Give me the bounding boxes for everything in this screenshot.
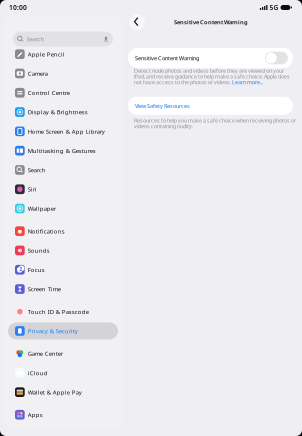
button[interactable]: Apps xyxy=(8,405,118,424)
staticText: Search xyxy=(26,35,44,43)
staticText: Apps xyxy=(28,411,43,419)
button[interactable]: Game Center xyxy=(8,344,118,363)
button[interactable]: Screen Time xyxy=(8,279,118,299)
button[interactable]: Search xyxy=(8,160,118,180)
staticText: Sensitive Content Warning xyxy=(135,54,199,62)
staticText: iPad, and receive guidance to help make … xyxy=(134,73,290,80)
button[interactable]: Wallet & Apple Pay xyxy=(8,382,118,402)
button[interactable]: Notifications xyxy=(8,221,118,241)
button[interactable]: Siri xyxy=(8,180,118,199)
button[interactable]: Wallpaper xyxy=(8,199,118,218)
staticText: Game Center xyxy=(28,350,63,358)
staticText: Focus xyxy=(28,266,45,274)
staticText: Learn more... xyxy=(232,78,263,86)
staticText: Wallet & Apple Pay xyxy=(28,388,82,396)
button[interactable]: Multitasking & Gestures xyxy=(8,141,118,160)
staticText: Siri xyxy=(28,185,37,193)
staticText: Display & Brightness xyxy=(28,108,88,116)
button[interactable]: Back xyxy=(129,14,145,30)
button[interactable]: Control Centre xyxy=(8,83,118,102)
staticText: Notifications xyxy=(28,227,65,235)
staticText: Sounds xyxy=(28,246,50,254)
staticText: 10:00 xyxy=(9,3,27,12)
staticText: Screen Time xyxy=(28,285,61,293)
button[interactable]: View Safety Resources xyxy=(128,97,293,115)
staticText: Apple Pencil xyxy=(28,50,65,58)
staticText: Privacy & Security xyxy=(28,327,78,335)
button[interactable]: Home Screen & App Library xyxy=(8,122,118,141)
staticText: Search xyxy=(28,166,46,174)
button[interactable]: Sounds xyxy=(8,241,118,260)
staticText: Multitasking & Gestures xyxy=(28,147,96,155)
staticText: 5G xyxy=(269,3,278,12)
staticText: videos containing nudity. xyxy=(134,123,193,130)
button[interactable]: Camera xyxy=(8,64,118,83)
staticText: Home Screen & App Library xyxy=(28,127,105,135)
button[interactable]: iCloud xyxy=(8,363,118,382)
button[interactable]: Focus xyxy=(8,260,118,279)
staticText: not have access to the photos or videos. xyxy=(134,78,232,86)
button[interactable]: Privacy & Security xyxy=(8,321,118,341)
staticText: Control Centre xyxy=(28,89,70,97)
staticText: iCloud xyxy=(28,369,48,377)
staticText: Sensitive Content Warning xyxy=(174,18,248,26)
button[interactable]: Apple Pencil xyxy=(8,44,118,64)
staticText: Wallpaper xyxy=(28,205,56,213)
button[interactable]: Search xyxy=(13,31,113,46)
staticText: Touch ID & Passcode xyxy=(28,308,89,316)
button[interactable]: Touch ID & Passcode xyxy=(8,302,118,321)
staticText: Resources to help you make a safe choice… xyxy=(134,117,296,124)
staticText: Camera xyxy=(28,69,48,77)
staticText: Detect nude photos and videos before the… xyxy=(134,67,284,74)
staticText: View Safety Resources xyxy=(135,102,190,110)
button[interactable]: Display & Brightness xyxy=(8,102,118,122)
